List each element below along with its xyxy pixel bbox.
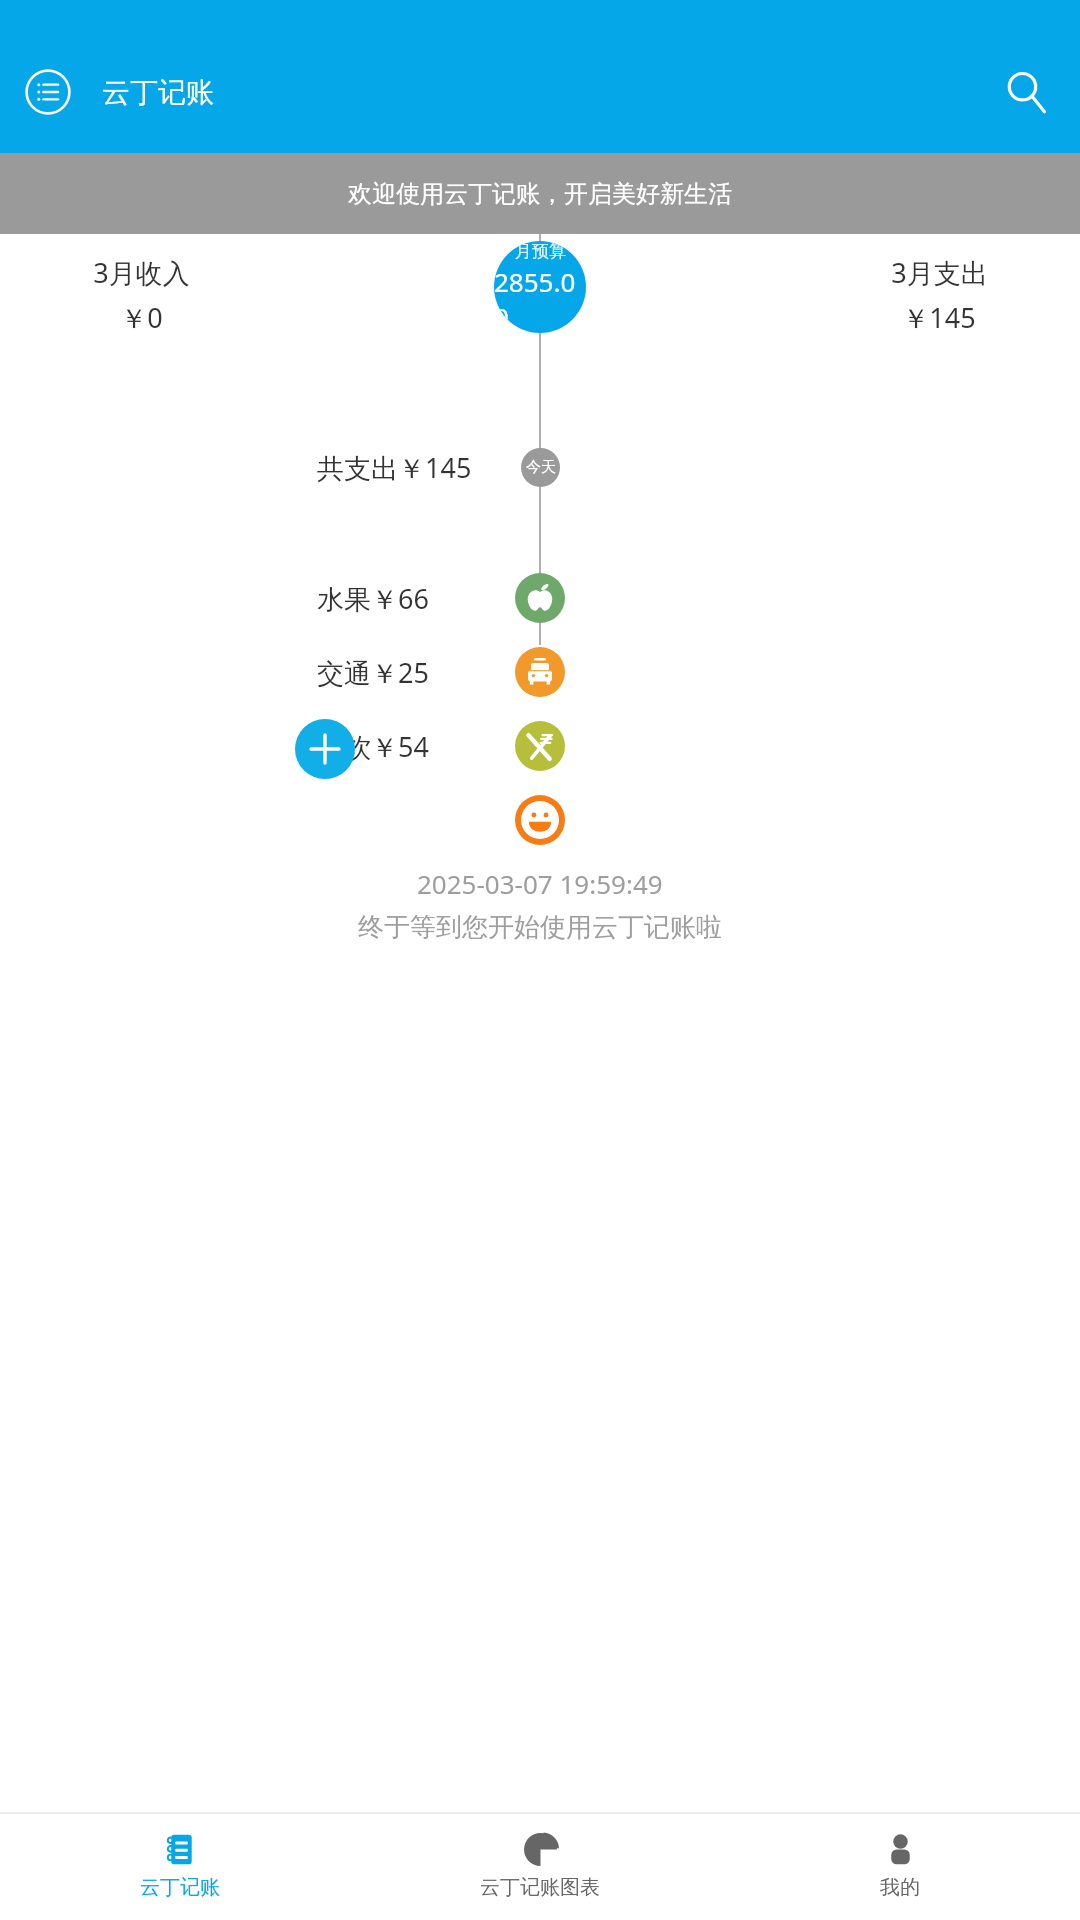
staticText: 2025-03-07 19:59:49 [417,866,663,901]
staticText: 水果￥66 [317,580,429,617]
button[interactable]: 云丁记账 [0,1813,360,1920]
staticText: 共支出￥145 [317,449,472,486]
staticText: ￥0 [120,299,163,336]
button[interactable]: 共支出￥145 [317,449,472,486]
button[interactable] [515,721,565,771]
staticText: 今天 [526,458,556,477]
staticText: 2855.00 [494,264,586,333]
button[interactable]: 今天 [521,448,560,487]
button[interactable]: 月预算 [494,241,586,333]
button[interactable] [515,647,565,697]
button[interactable]: 餐饮￥54 [317,728,429,765]
staticText: 交通￥25 [317,654,429,691]
button[interactable]: 云丁记账图表 [360,1813,720,1920]
staticText: 云丁记账图表 [480,1875,600,1900]
staticText: 终于等到您开始使用云丁记账啦 [358,911,722,944]
staticText: 云丁记账 [140,1875,220,1900]
button[interactable]: 水果￥66 [317,580,429,617]
staticText: 3月支出 [891,254,988,291]
button[interactable]: 欢迎使用云丁记账，开启美好新生活 [0,153,1080,234]
staticText: 3月收入 [93,254,190,291]
staticText: 餐饮￥54 [317,728,429,765]
button[interactable] [515,795,565,845]
staticText: ￥145 [902,299,976,336]
button[interactable]: Add record [295,719,355,779]
staticText: 我的 [880,1875,920,1900]
button[interactable]: Menu [16,60,80,124]
button[interactable]: 我的 [720,1813,1080,1920]
button[interactable]: 交通￥25 [317,654,429,691]
button[interactable]: Search [994,60,1058,124]
staticText: 欢迎使用云丁记账，开启美好新生活 [348,179,732,209]
button[interactable] [515,573,565,623]
staticText: 云丁记账 [102,75,214,110]
staticText: 月预算 [515,241,566,262]
